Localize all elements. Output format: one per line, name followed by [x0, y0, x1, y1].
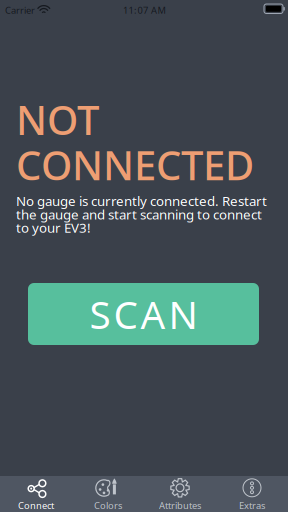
- button[interactable]: Colors: [72, 476, 144, 512]
- staticText: NOT: [16, 93, 99, 146]
- staticText: 11:07 AM: [123, 4, 165, 16]
- button[interactable]: Connect: [0, 476, 72, 512]
- staticText: Colors: [94, 499, 122, 512]
- button[interactable]: Attributes: [144, 476, 216, 512]
- staticText: Connect: [18, 499, 54, 512]
- staticText: SCAN: [89, 288, 197, 340]
- staticText: Carrier: [5, 4, 35, 16]
- button[interactable]: Extras: [216, 476, 288, 512]
- staticText: Extras: [239, 499, 265, 512]
- staticText: CONNECTED: [16, 138, 254, 191]
- staticText: No gauge is currently connected. Restart…: [16, 192, 267, 236]
- button[interactable]: SCAN: [28, 283, 259, 345]
- staticText: Attributes: [159, 499, 201, 512]
